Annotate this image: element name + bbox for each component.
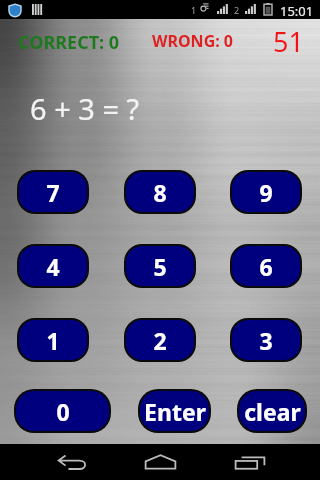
staticText: 6 + 3 = ? xyxy=(30,89,140,128)
button[interactable]: 3 xyxy=(232,320,300,360)
button[interactable]: 1 xyxy=(19,320,87,360)
button[interactable]: 6 xyxy=(232,246,300,286)
button[interactable]: 7 xyxy=(19,172,87,212)
staticText: 4 xyxy=(46,251,60,282)
staticText: 1 xyxy=(191,4,197,16)
staticText: 5 xyxy=(153,251,167,282)
staticText: WRONG: 0 xyxy=(152,30,234,52)
staticText: 51 xyxy=(273,23,304,60)
button[interactable]: 5 xyxy=(126,246,194,286)
staticText: 0 xyxy=(56,396,70,427)
staticText: 3 xyxy=(259,325,273,356)
button[interactable]: 4 xyxy=(19,246,87,286)
button[interactable]: Back xyxy=(42,444,102,480)
staticText: 2 xyxy=(153,325,167,356)
staticText: clear xyxy=(244,396,301,427)
button[interactable]: Recent apps xyxy=(220,444,280,480)
button[interactable]: 9 xyxy=(232,172,300,212)
staticText: 2 xyxy=(234,4,240,16)
button[interactable]: 8 xyxy=(126,172,194,212)
staticText: 8 xyxy=(153,177,167,208)
staticText: Enter xyxy=(144,396,206,427)
button[interactable]: Enter xyxy=(140,391,209,431)
staticText: 7 xyxy=(46,177,60,208)
staticText: CORRECT: 0 xyxy=(18,30,120,55)
button[interactable]: 0 xyxy=(16,391,109,431)
staticText: 9 xyxy=(259,177,273,208)
staticText: 1 xyxy=(46,325,60,356)
button[interactable]: clear xyxy=(239,391,305,431)
staticText: 6 xyxy=(259,251,273,282)
staticText: 15:01 xyxy=(280,2,314,20)
button[interactable]: 2 xyxy=(126,320,194,360)
button[interactable]: Home xyxy=(130,444,190,480)
